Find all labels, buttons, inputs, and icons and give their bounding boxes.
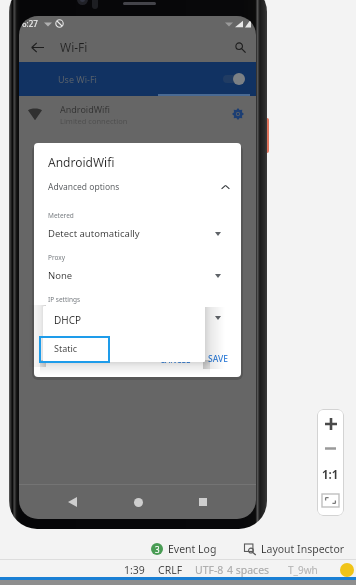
button[interactable]: Navigate up xyxy=(27,37,47,57)
staticText: Event Log xyxy=(168,542,217,556)
staticText: 4 spaces xyxy=(227,563,270,577)
staticText: Wi-Fi xyxy=(60,39,88,55)
button[interactable]: 3 xyxy=(148,540,220,558)
button[interactable]: AndroidWifi xyxy=(19,96,256,132)
staticText: DHCP xyxy=(54,313,82,327)
button[interactable]: Search xyxy=(230,37,250,57)
button[interactable]: SAVE xyxy=(201,349,235,369)
staticText: UTF-8 xyxy=(195,563,224,577)
button[interactable]: Back xyxy=(59,489,85,515)
button[interactable]: Network settings xyxy=(230,106,246,122)
staticText: IP settings xyxy=(48,295,81,304)
button[interactable]: DHCP xyxy=(48,311,221,324)
button[interactable]: Zoom to fit xyxy=(317,487,344,514)
staticText: Layout Inspector xyxy=(261,542,345,556)
staticText: Detect automatically xyxy=(48,227,140,240)
staticText: CRLF xyxy=(158,563,183,577)
button[interactable]: DHCP xyxy=(43,306,205,334)
button[interactable]: Layout Inspector xyxy=(241,540,348,558)
staticText: DHCP xyxy=(48,311,74,324)
staticText: 3 xyxy=(155,544,160,555)
staticText: CANCEL xyxy=(160,354,191,365)
staticText: Advanced options xyxy=(48,181,120,193)
staticText: Metered xyxy=(48,211,74,220)
staticText: Use Wi-Fi xyxy=(58,73,97,85)
staticText: None xyxy=(48,269,73,282)
button[interactable]: Detect automatically xyxy=(48,227,221,240)
button[interactable]: CANCEL xyxy=(153,350,198,369)
button[interactable]: Zoom out xyxy=(317,435,344,462)
staticText: T_9wh xyxy=(288,563,318,577)
staticText: Static xyxy=(54,342,78,354)
button[interactable]: Home xyxy=(125,489,151,515)
staticText: 1:39 xyxy=(124,563,145,577)
button[interactable]: Static xyxy=(43,334,205,362)
button[interactable]: Recent apps xyxy=(190,489,216,515)
button[interactable]: None xyxy=(48,269,221,282)
button[interactable]: Advanced options xyxy=(34,179,241,195)
staticText: SAVE xyxy=(208,353,228,365)
staticText: 6:27 xyxy=(22,18,38,29)
button[interactable]: Zoom in xyxy=(317,410,344,437)
button[interactable]: Zoom to actual size xyxy=(317,461,344,488)
staticText: AndroidWifi xyxy=(48,154,115,170)
staticText: Proxy xyxy=(48,253,66,262)
button[interactable]: Use Wi-Fi xyxy=(19,62,256,96)
staticText: Limited connection xyxy=(60,116,128,126)
staticText: 1:1 xyxy=(322,467,339,483)
staticText: AndroidWifi xyxy=(60,103,110,115)
